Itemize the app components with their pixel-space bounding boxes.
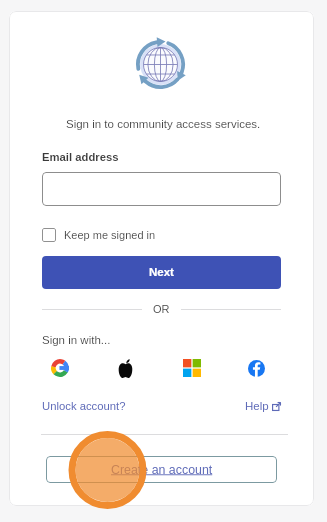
staticText: Create an account: [111, 463, 213, 477]
staticText: Keep me signed in: [64, 229, 156, 241]
button[interactable]: Sign in with Apple: [110, 357, 141, 379]
button[interactable]: Unlock account?: [42, 400, 126, 413]
button[interactable]: Sign in with Microsoft: [176, 357, 207, 379]
staticText: Next: [149, 266, 174, 279]
button[interactable]: Email address input: [42, 172, 281, 206]
staticText: Email address: [42, 151, 119, 164]
button[interactable]: Next: [42, 256, 281, 289]
button[interactable]: Sign in with Google: [44, 357, 75, 379]
staticText: Sign in with...: [42, 334, 111, 347]
staticText: Help: [245, 400, 269, 413]
button[interactable]: Keep me signed in: [42, 228, 156, 242]
staticText: OR: [153, 303, 170, 315]
button[interactable]: Help: [245, 400, 281, 413]
button[interactable]: Sign in with Facebook: [241, 357, 272, 379]
staticText: Sign in to community access services.: [66, 118, 261, 131]
button[interactable]: Create an account: [46, 456, 277, 483]
